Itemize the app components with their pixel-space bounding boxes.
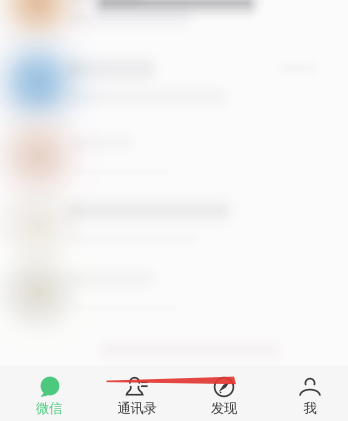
button[interactable]: 发现: [176, 366, 272, 421]
staticText: 微信: [36, 400, 62, 416]
staticText: 发现: [211, 400, 237, 416]
button[interactable]: 微信: [0, 366, 98, 421]
staticText: 我: [303, 400, 316, 416]
button[interactable]: 我: [272, 366, 348, 421]
staticText: 通讯录: [117, 400, 156, 416]
button[interactable]: 通讯录: [98, 366, 176, 421]
